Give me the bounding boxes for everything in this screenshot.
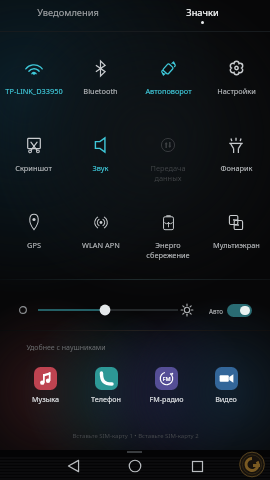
staticText: Автоповорот [145,86,192,96]
button[interactable]: Телефон [82,367,130,404]
staticText: Энерго сбережение [146,240,190,260]
button[interactable] [67,204,134,248]
button[interactable]: Видео [202,367,250,404]
button[interactable] [67,127,134,171]
staticText: Уведомления [37,6,99,19]
staticText: WLAN APN [82,240,120,250]
staticText: Звук [92,163,109,173]
staticText: Видео [215,394,237,404]
staticText: Мультиэкран [213,240,260,250]
button[interactable]: Авто [209,304,252,317]
button[interactable]: Recents [176,450,218,480]
staticText: FM [162,375,171,383]
staticText: Вставьте SIM-карту 1 • Вставьте SIM-карт… [72,432,199,440]
staticText: TP-LINK_D33950 [5,86,63,96]
button[interactable] [0,50,67,94]
button[interactable] [202,204,270,248]
staticText: Телефон [91,394,121,404]
button[interactable] [202,127,270,171]
staticText: Скриншот [15,163,52,173]
staticText: Музыка [32,394,59,404]
staticText: Авто [209,307,223,315]
button[interactable] [0,127,67,171]
button[interactable] [0,204,67,248]
button[interactable]: Музыка [21,367,69,404]
button[interactable]: Home [114,450,156,480]
button[interactable]: FM [142,367,190,404]
staticText: Значки [186,6,219,19]
button[interactable]: Уведомления [0,0,135,31]
button[interactable] [134,204,202,248]
button[interactable] [67,50,134,94]
staticText: FM-радио [149,394,184,404]
button[interactable] [202,50,270,94]
staticText: GPS [27,240,41,250]
button[interactable]: Back [52,450,94,480]
button[interactable]: Значки [135,0,270,31]
button[interactable] [134,127,202,171]
staticText: Удобнее с наушниками [26,343,106,353]
staticText: Настройки [217,86,256,96]
staticText: Bluetooth [83,86,118,96]
button[interactable] [134,50,202,94]
staticText: Передача данных [150,163,186,183]
staticText: Фонарик [220,163,253,173]
